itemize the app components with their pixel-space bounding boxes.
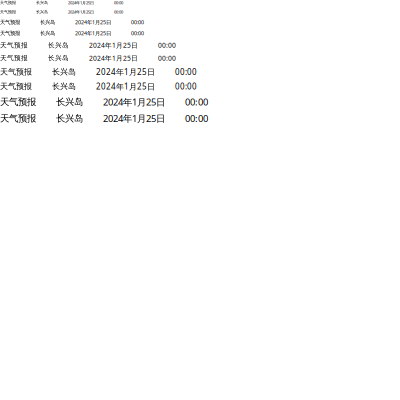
staticText: 00:00: [114, 0, 123, 5]
staticText: 00:00: [175, 81, 197, 92]
staticText: 天气预报: [0, 81, 32, 91]
staticText: 00:00: [175, 66, 197, 77]
staticText: 长兴岛: [36, 0, 48, 5]
staticText: 00:00: [158, 54, 176, 62]
staticText: 00:00: [185, 112, 208, 124]
staticText: 2024年1月25日: [68, 9, 94, 15]
staticText: 天气预报: [0, 96, 36, 108]
staticText: 00:00: [158, 41, 176, 50]
staticText: 2024年1月25日: [89, 54, 138, 62]
staticText: 长兴岛: [48, 41, 69, 49]
staticText: 长兴岛: [56, 96, 83, 108]
staticText: 2024年1月25日: [103, 96, 165, 108]
staticText: 00:00: [114, 9, 123, 15]
staticText: 天气预报: [0, 19, 20, 25]
staticText: 2024年1月25日: [96, 81, 155, 92]
staticText: 长兴岛: [56, 113, 83, 124]
staticText: 天气预报: [0, 54, 28, 62]
staticText: 长兴岛: [36, 9, 48, 14]
staticText: 长兴岛: [52, 67, 76, 77]
staticText: 长兴岛: [40, 30, 55, 37]
staticText: 2024年1月25日: [75, 30, 111, 37]
staticText: 天气预报: [0, 41, 28, 49]
staticText: 2024年1月25日: [89, 41, 138, 50]
staticText: 天气预报: [0, 9, 16, 14]
staticText: 长兴岛: [52, 81, 76, 91]
staticText: 2024年1月25日: [96, 66, 155, 77]
staticText: 天气预报: [0, 67, 32, 77]
staticText: 00:00: [185, 96, 208, 108]
staticText: 天气预报: [0, 30, 20, 37]
staticText: 2024年1月25日: [68, 0, 94, 5]
staticText: 00:00: [131, 19, 144, 26]
staticText: 天气预报: [0, 113, 36, 124]
staticText: 2024年1月25日: [75, 19, 111, 26]
staticText: 长兴岛: [48, 54, 69, 62]
staticText: 长兴岛: [40, 19, 55, 25]
staticText: 00:00: [131, 30, 144, 37]
staticText: 天气预报: [0, 0, 16, 5]
staticText: 2024年1月25日: [103, 112, 165, 124]
